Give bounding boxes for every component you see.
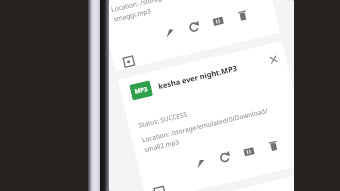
staticText: Location: /storage/emulated/0/Download/ (110, 0, 238, 14)
button[interactable]: Share (155, 18, 185, 48)
button[interactable]: Delete (228, 0, 258, 31)
button[interactable]: smaggi.mp3 (109, 0, 280, 72)
staticText: small2.mp3 (143, 137, 180, 154)
button[interactable]: Delete (258, 131, 289, 161)
staticText: kesha ever night.MP3 (157, 63, 238, 91)
button[interactable]: Share (185, 148, 216, 178)
button[interactable]: img_203.png (148, 171, 294, 191)
button[interactable]: Open folder (234, 137, 264, 167)
staticText: Location: /storage/emulated/0/Download/ (141, 106, 269, 144)
staticText: smaggi.mp3 (112, 6, 152, 24)
button[interactable]: Retry download (210, 142, 240, 172)
button[interactable]: MP3 (117, 41, 294, 191)
button[interactable]: Open folder (203, 6, 233, 36)
button[interactable]: Preview (153, 184, 170, 191)
staticText: Status: SUCCESS (138, 109, 188, 130)
button[interactable]: Retry download (179, 12, 209, 42)
staticText: MP3 (134, 85, 148, 96)
button[interactable]: Preview (122, 53, 139, 66)
button[interactable]: Close (265, 51, 281, 68)
